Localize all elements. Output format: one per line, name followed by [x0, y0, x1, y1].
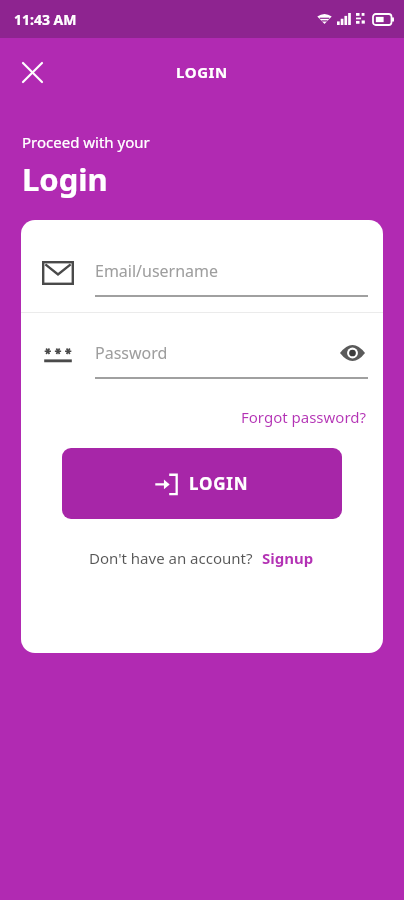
button[interactable]: LOGIN [62, 448, 342, 519]
staticText: LOGIN [176, 62, 228, 82]
staticText: Proceed with your [22, 132, 150, 152]
button[interactable]: Show password [337, 338, 367, 368]
staticText: Signup [262, 548, 314, 568]
staticText: Don't have an account? [89, 548, 253, 568]
staticText: Forgot password? [241, 407, 367, 427]
staticText: Email/username [95, 260, 383, 282]
button[interactable]: Password [21, 330, 383, 380]
staticText: 11:43 AM [14, 10, 77, 29]
staticText: LOGIN [189, 472, 249, 495]
button[interactable]: Close [12, 52, 52, 92]
staticText: Password [95, 342, 337, 364]
button[interactable]: Forgot password? [239, 404, 369, 430]
button[interactable]: Signup [260, 545, 316, 571]
staticText: Login [22, 158, 108, 200]
button[interactable]: Email/username [21, 248, 383, 298]
